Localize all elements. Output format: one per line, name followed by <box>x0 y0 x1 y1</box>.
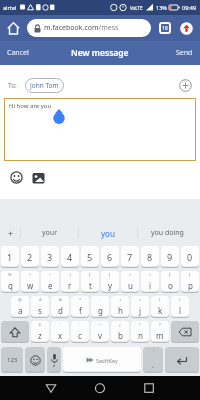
button[interactable]: # <box>31 296 49 318</box>
staticText: . <box>152 359 155 370</box>
staticText: b <box>118 330 123 341</box>
staticText: you doing <box>151 228 184 238</box>
button[interactable]: { <box>161 271 179 293</box>
button[interactable]: John Tom <box>25 78 64 93</box>
button[interactable]: 0 <box>181 246 199 268</box>
staticText: 7 <box>127 251 133 263</box>
button[interactable] <box>180 22 193 35</box>
button[interactable]: 5 <box>81 246 99 268</box>
button[interactable]: - <box>91 296 109 318</box>
staticText: ~ <box>49 272 52 277</box>
button[interactable]: ? <box>151 321 169 343</box>
button[interactable] <box>25 347 45 373</box>
button[interactable]: Send <box>176 48 200 58</box>
staticText: g <box>98 305 103 316</box>
button[interactable]: ^ <box>21 271 39 293</box>
staticText: New message <box>71 47 129 59</box>
button[interactable] <box>10 171 23 184</box>
button[interactable]: & <box>51 296 69 318</box>
button[interactable] <box>1 321 29 343</box>
button[interactable]: your <box>21 228 78 238</box>
staticText: 13% <box>156 4 167 11</box>
staticText: [ <box>89 272 91 277</box>
button[interactable] <box>6 21 21 36</box>
button[interactable]: you <box>79 228 137 239</box>
button[interactable]: 9 <box>161 246 179 268</box>
staticText: n <box>138 330 143 341</box>
staticText: < <box>129 272 132 277</box>
staticText: u <box>128 280 133 291</box>
button[interactable] <box>143 382 155 394</box>
button[interactable]: | <box>61 271 79 293</box>
button[interactable]: ’ <box>143 347 163 373</box>
button[interactable]: 6 <box>101 246 119 268</box>
staticText: Hi how are you <box>9 102 52 110</box>
button[interactable] <box>32 172 45 184</box>
staticText: · <box>79 322 81 327</box>
button[interactable]: + <box>111 296 129 318</box>
staticText: o <box>168 280 173 291</box>
button[interactable]: £ <box>31 321 49 343</box>
button[interactable]: } <box>181 271 199 293</box>
button[interactable] <box>179 79 192 92</box>
button[interactable]: 7 <box>121 246 139 268</box>
staticText: 09:49 <box>182 4 197 11</box>
staticText: j <box>139 305 142 316</box>
button[interactable]: m.facebook.com/mess <box>27 19 151 37</box>
staticText: t <box>89 280 92 291</box>
staticText: c <box>78 330 82 341</box>
staticText: airtel <box>3 4 17 11</box>
button[interactable]: ` <box>51 321 69 343</box>
button[interactable]: [ <box>81 271 99 293</box>
button[interactable]: 1 <box>1 246 19 268</box>
button[interactable] <box>165 347 199 373</box>
button[interactable]: * <box>71 296 89 318</box>
button[interactable]: % <box>1 271 19 293</box>
staticText: ’ <box>153 349 154 356</box>
button[interactable]: 2 <box>21 246 39 268</box>
button[interactable]: 123 <box>1 347 23 373</box>
button[interactable]: Cancel <box>0 48 29 58</box>
button[interactable]: ] <box>101 271 119 293</box>
button[interactable] <box>45 382 57 394</box>
button[interactable] <box>171 321 199 343</box>
button[interactable] <box>94 382 106 394</box>
staticText: 6 <box>107 251 113 263</box>
staticText: a <box>18 305 23 316</box>
staticText: > <box>149 272 152 277</box>
button[interactable]: 4 <box>61 246 79 268</box>
staticText: 5 <box>87 251 93 263</box>
staticText: } <box>189 272 191 277</box>
button[interactable]: < <box>121 271 139 293</box>
staticText: 4 <box>67 251 73 263</box>
staticText: @ <box>18 297 22 302</box>
staticText: s <box>38 305 42 316</box>
staticText: 0 <box>187 251 193 263</box>
button[interactable]: + <box>4 227 18 239</box>
button[interactable]: 8 <box>141 246 159 268</box>
staticText: John Tom <box>30 81 59 90</box>
staticText: e <box>48 280 53 291</box>
button[interactable]: ( <box>151 296 169 318</box>
button[interactable]: @ <box>11 296 29 318</box>
staticText: VoLTE <box>130 5 143 11</box>
button[interactable]: ) <box>171 296 189 318</box>
button[interactable]: • <box>91 321 109 343</box>
staticText: 2 <box>27 251 33 263</box>
button[interactable]: ¿ <box>111 321 129 343</box>
button[interactable]: · <box>71 321 89 343</box>
staticText: To: <box>8 81 17 90</box>
button[interactable] <box>47 347 61 373</box>
button[interactable]: you doing <box>138 228 196 238</box>
button[interactable]: = <box>131 296 149 318</box>
button[interactable]: SwiftKey <box>63 347 141 373</box>
staticText: £ <box>39 322 42 327</box>
staticText: # <box>39 297 42 302</box>
button[interactable]: Hi how are you <box>4 98 196 161</box>
button[interactable]: ~ <box>41 271 59 293</box>
button[interactable]: > <box>141 271 159 293</box>
button[interactable]: 3 <box>41 246 59 268</box>
button[interactable]: 10 <box>159 22 171 34</box>
staticText: ] <box>109 272 111 277</box>
button[interactable]: ! <box>131 321 149 343</box>
